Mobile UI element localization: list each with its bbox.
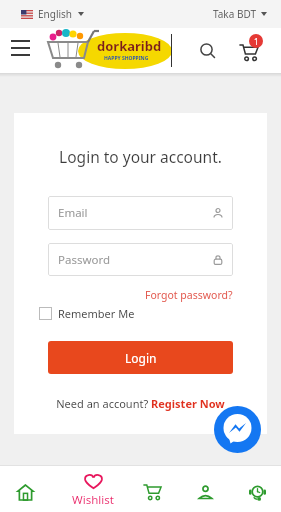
button[interactable] [132,472,172,512]
staticText: English [38,7,73,21]
button[interactable]: Wishlist [66,465,120,512]
button[interactable] [185,472,225,512]
button[interactable] [214,406,261,453]
button[interactable] [237,472,277,512]
button[interactable]: Remember Me [39,306,135,321]
button[interactable] [6,36,34,60]
button[interactable]: Taka BDT [213,7,267,21]
staticText: Taka BDT [213,7,256,21]
staticText: Remember Me [58,306,135,321]
button[interactable]: Forgot password? [145,288,233,302]
staticText: Wishlist [72,492,114,508]
button[interactable]: dorkaribd [46,28,172,73]
button[interactable]: 1 [236,34,270,68]
staticText: Login [125,350,157,366]
button[interactable]: Password [48,243,233,276]
button[interactable]: English [21,7,84,21]
button[interactable] [195,38,221,64]
button[interactable]: Email [48,196,233,230]
staticText: HAPPY SHOPPING [104,55,149,62]
button[interactable] [5,472,45,512]
staticText: 1 [254,36,259,47]
staticText: dorkaribd [97,37,162,55]
staticText: Password [58,252,213,268]
staticText: Login to your account. [48,146,233,167]
button[interactable]: Need an account? Register Now [48,396,233,411]
staticText: Email [58,205,213,221]
button[interactable]: Login [48,341,233,374]
